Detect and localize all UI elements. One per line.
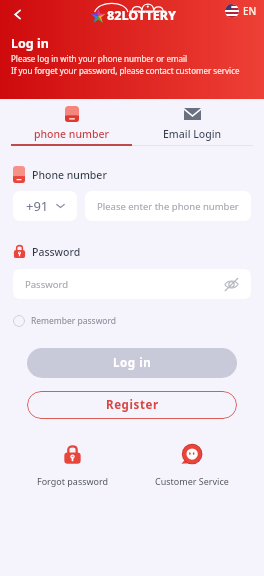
staticText: Log in: [11, 35, 49, 52]
staticText: Forgot password: [37, 475, 109, 487]
staticText: +91: [26, 197, 49, 215]
button[interactable]: Show password: [224, 277, 239, 292]
staticText: Password: [32, 245, 81, 259]
staticText: 82LOTTERY: [107, 7, 177, 24]
staticText: Please enter the phone number: [97, 200, 239, 213]
staticText: If you forget your password, please cont…: [11, 65, 240, 76]
staticText: EN: [243, 4, 257, 18]
button[interactable]: Please enter the phone number: [85, 191, 251, 221]
button[interactable]: Customer Service: [132, 444, 251, 487]
button[interactable]: Language EN: [225, 4, 257, 18]
staticText: Please log in with your phone number or …: [11, 53, 188, 64]
staticText: Remember password: [31, 315, 117, 327]
staticText: phone number: [34, 127, 109, 141]
staticText: Password: [25, 278, 68, 291]
button[interactable]: Remember password: [13, 315, 117, 327]
staticText: Log in: [113, 355, 152, 371]
button[interactable]: Email Login: [132, 99, 253, 146]
button[interactable]: Log in: [27, 348, 237, 378]
button[interactable]: Password: [13, 269, 251, 299]
staticText: Phone number: [32, 168, 107, 182]
button[interactable]: Back: [4, 1, 30, 27]
staticText: Email Login: [163, 127, 222, 141]
button[interactable]: Forgot password: [13, 444, 132, 487]
button[interactable]: Register: [27, 391, 237, 419]
button[interactable]: phone number: [11, 99, 132, 146]
staticText: Customer Service: [155, 475, 229, 487]
staticText: Register: [106, 397, 159, 413]
button[interactable]: +91: [13, 191, 77, 221]
